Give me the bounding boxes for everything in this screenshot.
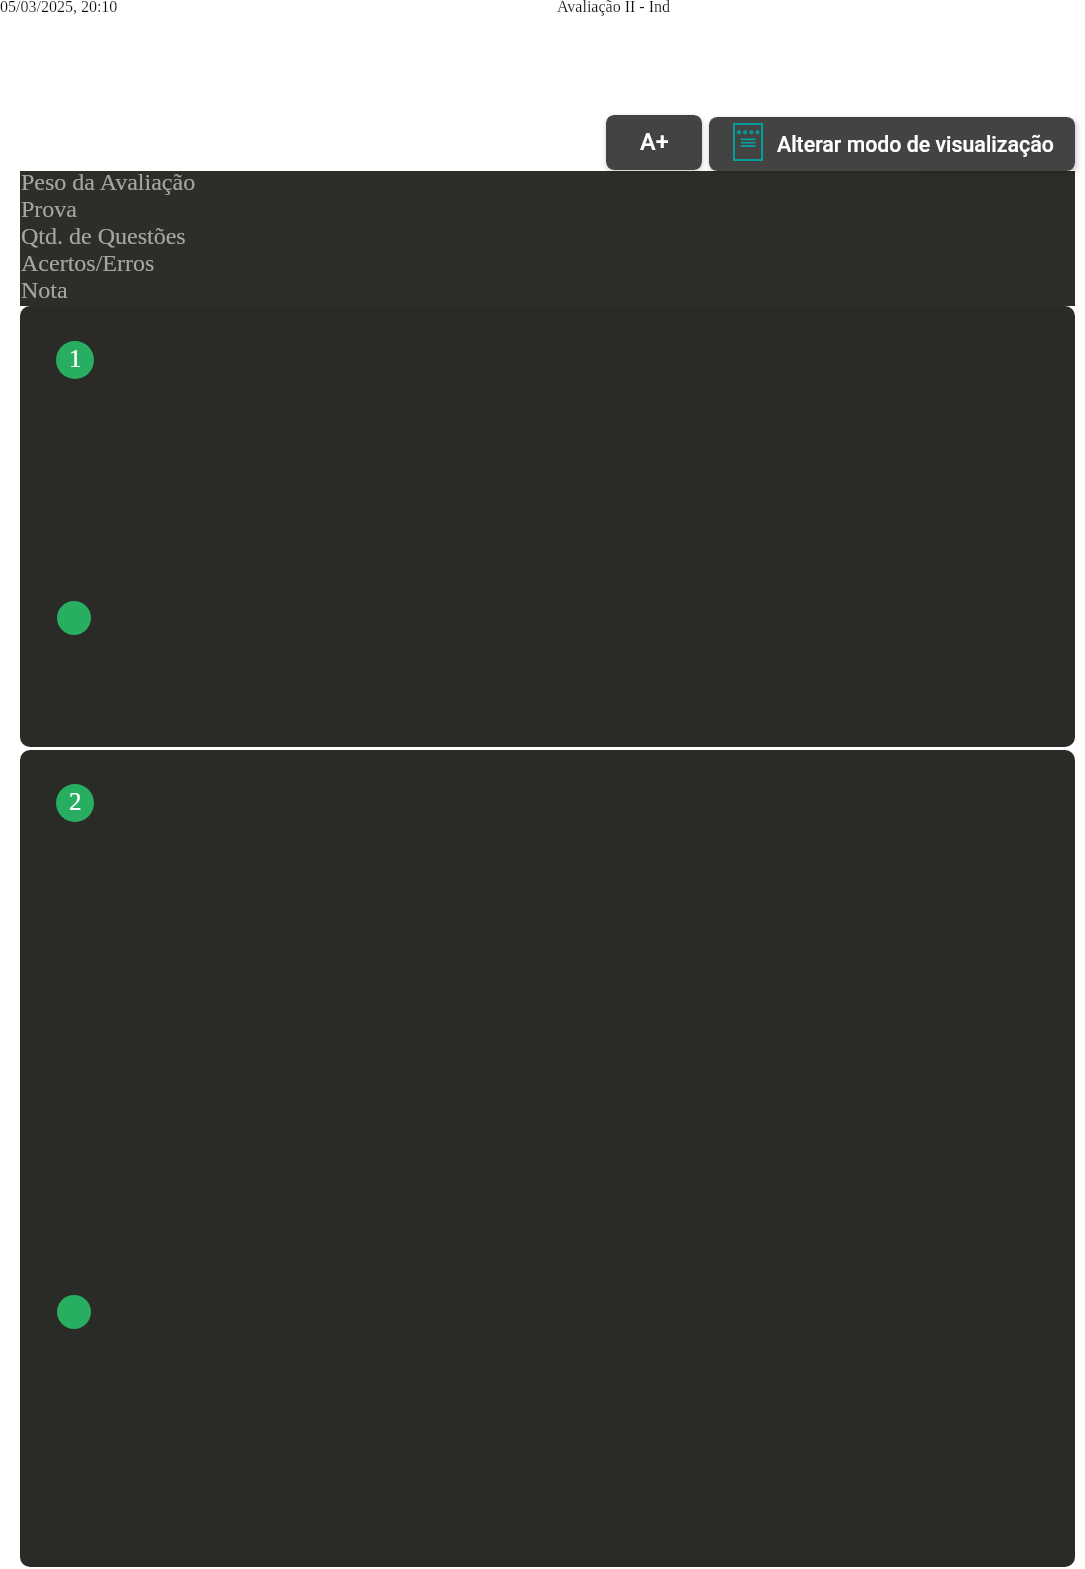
other: Alterar modo de visualização xyxy=(733,123,763,161)
staticText: Alterar modo de visualização xyxy=(777,132,1054,157)
staticText: Avaliação II - Ind xyxy=(557,0,670,16)
button[interactable]: 2 xyxy=(20,750,1075,1567)
staticText: Qtd. de Questões xyxy=(21,223,186,250)
staticText: Prova xyxy=(21,196,77,223)
button[interactable]: Alterar modo de visualização xyxy=(709,117,1075,171)
staticText: A+ xyxy=(640,128,669,156)
staticText: Nota xyxy=(21,277,68,304)
button[interactable]: 1 xyxy=(20,306,1075,747)
staticText: Acertos/Erros xyxy=(21,250,155,277)
staticText: 05/03/2025, 20:10 xyxy=(0,0,118,16)
staticText: Peso da Avaliação xyxy=(21,169,196,196)
staticText: 1 xyxy=(69,345,82,373)
button[interactable]: A+ xyxy=(606,115,702,170)
staticText: 2 xyxy=(69,788,82,816)
